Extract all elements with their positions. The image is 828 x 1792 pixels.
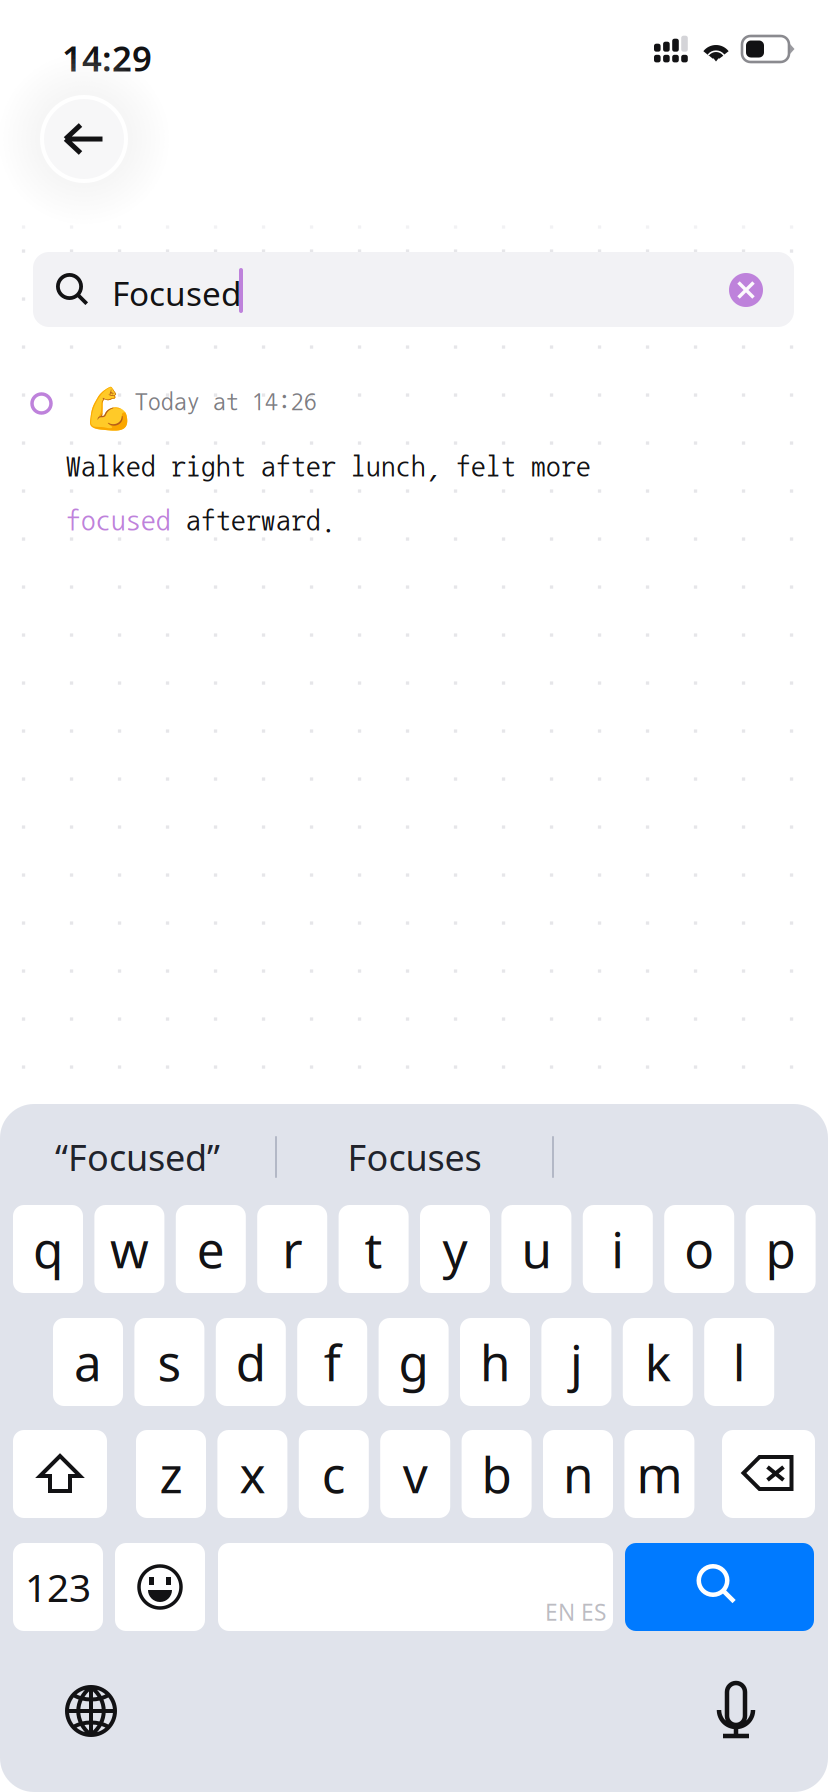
- staticText: j: [570, 1329, 583, 1395]
- button[interactable]: e: [176, 1205, 246, 1293]
- button[interactable]: 123: [13, 1543, 103, 1631]
- button[interactable]: j: [541, 1318, 611, 1406]
- staticText: p: [766, 1216, 796, 1282]
- button[interactable]: Clear search text: [717, 261, 775, 319]
- button[interactable]: b: [462, 1430, 532, 1518]
- button[interactable]: i: [583, 1205, 653, 1293]
- button[interactable]: z: [136, 1430, 206, 1518]
- button[interactable]: n: [543, 1430, 613, 1518]
- button[interactable]: Dictation: [718, 1680, 756, 1740]
- staticText: s: [157, 1329, 181, 1395]
- button[interactable]: Emoji keyboard: [115, 1543, 205, 1631]
- staticText: f: [324, 1329, 341, 1395]
- staticText: w: [110, 1216, 149, 1282]
- button[interactable]: h: [460, 1318, 530, 1406]
- staticText: y: [442, 1216, 467, 1282]
- button[interactable]: Space: [218, 1543, 613, 1631]
- button[interactable]: p: [746, 1205, 816, 1293]
- staticText: g: [399, 1329, 429, 1395]
- button[interactable]: l: [704, 1318, 774, 1406]
- staticText: m: [636, 1441, 682, 1507]
- staticText: afterward.: [171, 506, 336, 535]
- staticText: t: [365, 1216, 383, 1282]
- staticText: o: [684, 1216, 714, 1282]
- staticText: e: [197, 1216, 225, 1282]
- button[interactable]: Next keyboard: [64, 1684, 118, 1738]
- staticText: v: [403, 1441, 428, 1507]
- staticText: Walked right after lunch, felt more: [66, 452, 591, 481]
- staticText: EN ES: [545, 1597, 606, 1627]
- button[interactable]: x: [217, 1430, 287, 1518]
- button[interactable]: d: [216, 1318, 286, 1406]
- staticText: q: [33, 1216, 63, 1282]
- staticText: u: [521, 1216, 551, 1282]
- staticText: k: [645, 1329, 671, 1395]
- staticText: Focused: [112, 271, 242, 315]
- staticText: 14:29: [62, 35, 152, 81]
- button[interactable]: g: [379, 1318, 449, 1406]
- staticText: “Focused”: [55, 1133, 220, 1181]
- button[interactable]: Focuses: [277, 1126, 552, 1188]
- staticText: x: [239, 1441, 265, 1507]
- staticText: n: [563, 1441, 593, 1507]
- staticText: c: [322, 1441, 346, 1507]
- staticText: i: [611, 1216, 624, 1282]
- staticText: h: [480, 1329, 510, 1395]
- staticText: d: [236, 1329, 266, 1395]
- button[interactable]: u: [501, 1205, 571, 1293]
- button[interactable]: k: [623, 1318, 693, 1406]
- staticText: r: [282, 1216, 302, 1282]
- button[interactable]: t: [339, 1205, 409, 1293]
- button[interactable]: r: [257, 1205, 327, 1293]
- button[interactable]: “Focused”: [0, 1126, 275, 1188]
- button[interactable]: m: [624, 1430, 694, 1518]
- staticText: focused: [66, 506, 171, 535]
- button[interactable]: q: [13, 1205, 83, 1293]
- staticText: Focuses: [347, 1133, 481, 1181]
- button[interactable]: Search: [625, 1543, 814, 1631]
- button[interactable]: s: [134, 1318, 204, 1406]
- button[interactable]: v: [380, 1430, 450, 1518]
- button[interactable]: c: [299, 1430, 369, 1518]
- staticText: Today at 14:26: [135, 389, 317, 414]
- button[interactable]: Shift: [13, 1430, 107, 1518]
- staticText: 123: [25, 1561, 91, 1613]
- staticText: l: [733, 1329, 746, 1395]
- button[interactable]: Delete: [722, 1430, 815, 1518]
- button[interactable]: f: [297, 1318, 367, 1406]
- button[interactable]: a: [53, 1318, 123, 1406]
- staticText: z: [159, 1441, 182, 1507]
- button[interactable]: y: [420, 1205, 490, 1293]
- staticText: a: [74, 1329, 102, 1395]
- staticText: b: [482, 1441, 512, 1507]
- button[interactable]: o: [664, 1205, 734, 1293]
- button[interactable]: w: [94, 1205, 164, 1293]
- staticText: 💪: [83, 385, 134, 432]
- button[interactable]: Back: [0, 54, 169, 224]
